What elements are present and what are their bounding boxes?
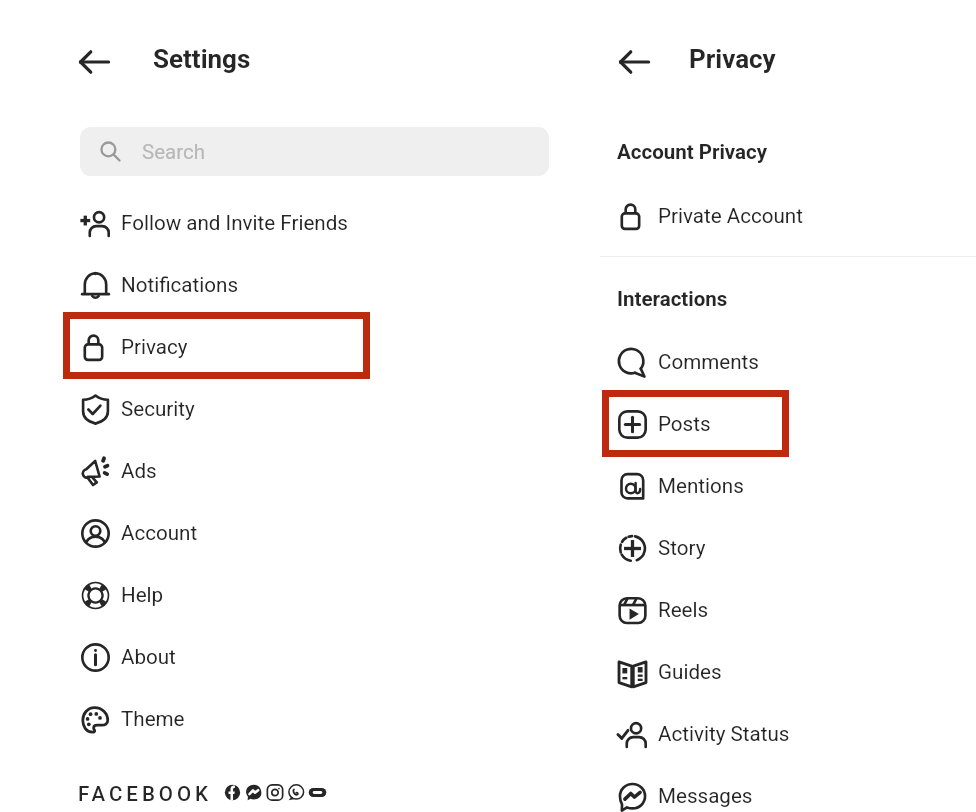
button[interactable]: About — [66, 626, 496, 688]
button[interactable]: Facebook family of apps — [220, 776, 330, 809]
button[interactable]: Theme — [66, 688, 496, 750]
button[interactable]: Notifications — [66, 254, 496, 316]
staticText: Security — [121, 397, 195, 421]
button[interactable]: Account — [66, 502, 496, 564]
staticText: Comments — [658, 350, 759, 374]
button[interactable]: Help — [66, 564, 496, 626]
button[interactable]: Story — [603, 517, 953, 579]
staticText: Messages — [658, 784, 753, 808]
staticText: Story — [658, 536, 706, 560]
button[interactable]: Guides — [603, 641, 953, 703]
button[interactable]: Security — [66, 378, 496, 440]
staticText: Help — [121, 583, 164, 607]
staticText: FACEBOOK — [78, 782, 213, 806]
button[interactable]: Back — [78, 45, 112, 79]
button[interactable]: Comments — [603, 331, 953, 393]
button[interactable]: Messages — [603, 765, 953, 812]
staticText: Follow and Invite Friends — [121, 211, 348, 235]
staticText: Activity Status — [658, 722, 790, 746]
button[interactable]: Posts — [603, 393, 953, 455]
staticText: About — [121, 645, 176, 669]
staticText: Theme — [121, 707, 185, 731]
staticText: Private Account — [658, 204, 803, 228]
staticText: Ads — [121, 459, 157, 483]
staticText: Account Privacy — [617, 140, 768, 164]
staticText: Search — [142, 140, 205, 164]
button[interactable]: Privacy — [66, 316, 496, 378]
staticText: Privacy — [689, 44, 776, 74]
staticText: Account — [121, 521, 198, 545]
button[interactable]: Private Account — [603, 185, 953, 247]
button[interactable]: Reels — [603, 579, 953, 641]
button[interactable]: Back — [618, 45, 652, 79]
button[interactable]: FACEBOOK — [66, 772, 226, 812]
staticText: Mentions — [658, 474, 744, 498]
staticText: Posts — [658, 412, 711, 436]
button[interactable]: Follow and Invite Friends — [66, 192, 496, 254]
button[interactable]: Activity Status — [603, 703, 953, 765]
button[interactable]: Search — [80, 127, 549, 176]
staticText: Privacy — [121, 335, 188, 359]
staticText: Notifications — [121, 273, 239, 297]
staticText: Reels — [658, 598, 709, 622]
staticText: Settings — [153, 44, 251, 74]
button[interactable]: Ads — [66, 440, 496, 502]
button[interactable]: Mentions — [603, 455, 953, 517]
staticText: Guides — [658, 660, 722, 684]
staticText: Interactions — [617, 287, 728, 311]
